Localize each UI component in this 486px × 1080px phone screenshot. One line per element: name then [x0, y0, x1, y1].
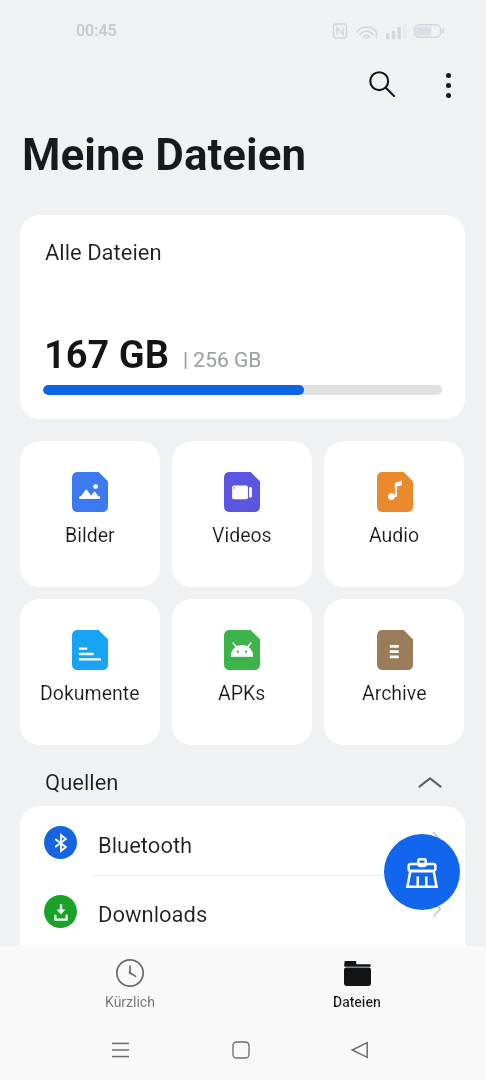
staticText: Bilder — [65, 524, 115, 547]
button[interactable]: APKs — [172, 599, 312, 745]
button[interactable]: Archive — [324, 599, 464, 745]
button[interactable]: Audio — [324, 441, 464, 587]
staticText: | 256 GB — [183, 348, 262, 373]
button[interactable]: Bereinigen — [384, 834, 460, 910]
button[interactable]: Mehr Optionen — [422, 59, 474, 111]
button[interactable]: Dokumente — [20, 599, 160, 745]
staticText: Kürzlich — [105, 994, 155, 1010]
staticText: Quellen — [45, 770, 119, 796]
button[interactable]: Dateien — [297, 946, 417, 1016]
staticText: Downloads — [98, 902, 208, 928]
button[interactable]: Quellen — [20, 762, 465, 802]
button[interactable]: Bilder — [20, 441, 160, 587]
staticText: APKs — [218, 682, 266, 705]
staticText: Alle Dateien — [45, 240, 162, 266]
staticText: Audio — [369, 524, 420, 547]
staticText: Dokumente — [40, 682, 140, 705]
button[interactable]: Suchen — [356, 58, 408, 110]
button[interactable]: Startbildschirm — [217, 1026, 265, 1074]
staticText: Meine Dateien — [22, 129, 307, 181]
staticText: Archive — [362, 682, 427, 705]
button[interactable]: Kürzlich — [70, 946, 190, 1016]
staticText: Videos — [212, 524, 272, 547]
staticText: Dateien — [333, 994, 381, 1010]
button[interactable]: Downloads — [20, 875, 465, 944]
button[interactable]: Bluetooth — [20, 806, 465, 875]
button[interactable]: Letzte Apps — [96, 1026, 144, 1074]
button[interactable]: Alle Dateien — [20, 215, 465, 419]
staticText: 00:45 — [76, 21, 117, 40]
button[interactable]: Videos — [172, 441, 312, 587]
button[interactable]: Zurück — [336, 1026, 384, 1074]
staticText: Bluetooth — [98, 833, 193, 859]
staticText: 167 GB — [44, 333, 170, 378]
